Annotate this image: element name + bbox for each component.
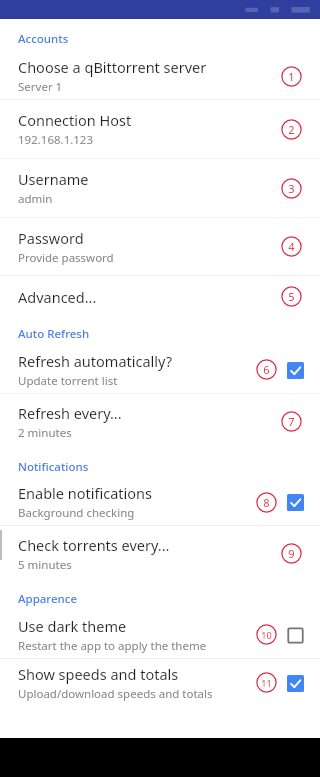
staticText: Server 1	[18, 79, 63, 95]
button[interactable]: Use dark theme	[0, 611, 320, 658]
button[interactable]: Connection Host	[0, 100, 320, 158]
staticText: Background checking	[18, 505, 135, 521]
staticText: Advanced...	[18, 287, 97, 307]
staticText: Show speeds and totals	[18, 664, 179, 684]
button[interactable]: Username	[0, 159, 320, 217]
staticText: 192.168.1.123	[18, 132, 94, 148]
staticText: Use dark theme	[18, 616, 127, 636]
staticText: Username	[18, 169, 89, 189]
staticText: Update torrent list	[18, 373, 118, 389]
staticText: Password	[18, 228, 84, 248]
staticText: Upload/download speeds and totals	[18, 686, 213, 702]
button[interactable]: Show speeds and totals	[0, 659, 320, 706]
button[interactable]: Check torrents every...	[0, 526, 320, 581]
staticText: Refresh automatically?	[18, 351, 173, 371]
staticText: Apparence	[18, 591, 78, 607]
button[interactable]: Show speeds and totals	[280, 668, 310, 698]
staticText: 10	[261, 629, 272, 641]
staticText: Provide password	[18, 250, 114, 266]
staticText: Enable notifications	[18, 483, 152, 503]
staticText: 5 minutes	[18, 557, 72, 573]
button[interactable]: Refresh automatically?	[280, 355, 310, 385]
staticText: Auto Refresh	[18, 326, 90, 342]
staticText: 3	[288, 181, 295, 196]
staticText: 7	[288, 414, 295, 429]
staticText: Restart the app to apply the theme	[18, 638, 207, 654]
button[interactable]: Password	[0, 218, 320, 275]
staticText: 5	[288, 289, 295, 304]
staticText: admin	[18, 191, 53, 207]
button[interactable]: Refresh automatically?	[0, 346, 320, 393]
staticText: 2	[288, 122, 295, 137]
staticText: Choose a qBittorrent server	[18, 57, 207, 77]
staticText: 11	[261, 677, 272, 689]
staticText: 1	[288, 69, 295, 84]
staticText: Check torrents every...	[18, 535, 170, 555]
button[interactable]: Enable notifications	[0, 479, 320, 525]
staticText: 4	[288, 239, 295, 254]
button[interactable]: Enable notifications	[280, 487, 310, 517]
staticText: Refresh every...	[18, 403, 122, 423]
button[interactable]: Refresh every...	[0, 394, 320, 449]
button[interactable]: Choose a qBittorrent server	[0, 53, 320, 99]
staticText: Notifications	[18, 459, 89, 475]
staticText: Accounts	[18, 31, 69, 47]
button[interactable]: Advanced...	[0, 276, 320, 317]
staticText: Connection Host	[18, 110, 132, 130]
staticText: 6	[263, 362, 270, 377]
staticText: 2 minutes	[18, 425, 72, 441]
button[interactable]: Use dark theme	[280, 620, 310, 650]
staticText: 8	[263, 495, 270, 510]
staticText: 9	[288, 546, 295, 561]
